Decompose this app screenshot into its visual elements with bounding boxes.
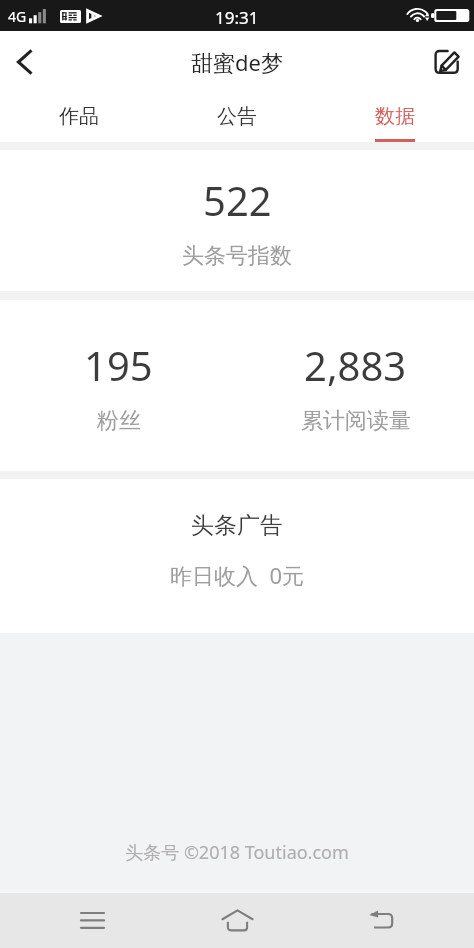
staticText: 累计阅读量 [301,407,411,435]
staticText: 195 [84,338,153,392]
button[interactable]: Back [353,893,408,948]
staticText: 头条号指数 [182,242,292,270]
staticText: 作品 [59,104,99,129]
staticText: 公告 [217,104,257,129]
staticText: 数据 [375,104,415,129]
button[interactable]: 522 [0,150,474,291]
staticText: 甜蜜de梦 [191,47,283,77]
button[interactable]: Home [210,893,265,948]
button[interactable]: Back [0,32,56,88]
button[interactable]: 195 [0,300,237,471]
staticText: 头条号 ©2018 Toutiao.com [125,840,349,865]
staticText: 4G [8,7,27,26]
button[interactable]: Recent apps [65,893,120,948]
button[interactable]: 数据 [316,88,474,142]
button[interactable]: 作品 [0,88,158,142]
staticText: 19:31 [215,6,259,29]
staticText: 粉丝 [97,407,141,435]
staticText: 2,883 [304,338,407,392]
staticText: 522 [203,173,272,227]
button[interactable]: 公告 [158,88,316,142]
staticText: 昨日收入 0元 [170,560,305,590]
button[interactable]: 头条广告 [0,479,474,633]
button[interactable]: Edit [418,32,474,88]
staticText: 头条广告 [191,511,283,540]
button[interactable]: 2,883 [237,300,474,471]
